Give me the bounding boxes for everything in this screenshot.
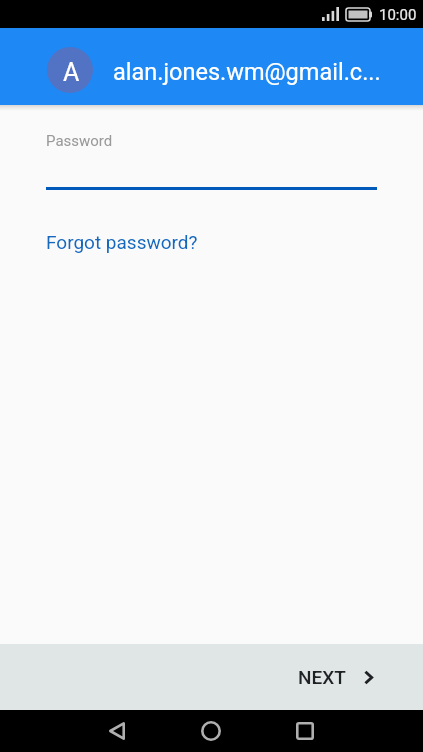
staticText: alan.jones.wm@gmail.c... <box>113 58 381 86</box>
button[interactable]: Account avatar <box>47 47 93 93</box>
staticText: NEXT <box>298 666 346 688</box>
button[interactable]: alan.jones.wm@gmail.c... <box>113 56 381 84</box>
staticText: Password <box>46 132 113 150</box>
button[interactable]: NEXT <box>284 654 388 700</box>
button[interactable]: Password field <box>31 113 392 193</box>
button[interactable]: Home <box>190 710 232 752</box>
other: Signal strength <box>322 7 339 21</box>
other: Battery <box>346 8 372 21</box>
staticText: Forgot password? <box>46 231 198 253</box>
button[interactable]: Recent apps <box>284 710 326 752</box>
staticText: A <box>63 58 80 87</box>
button[interactable]: Back <box>96 710 138 752</box>
button[interactable]: Forgot password? <box>46 231 198 253</box>
staticText: 10:00 <box>379 6 417 24</box>
